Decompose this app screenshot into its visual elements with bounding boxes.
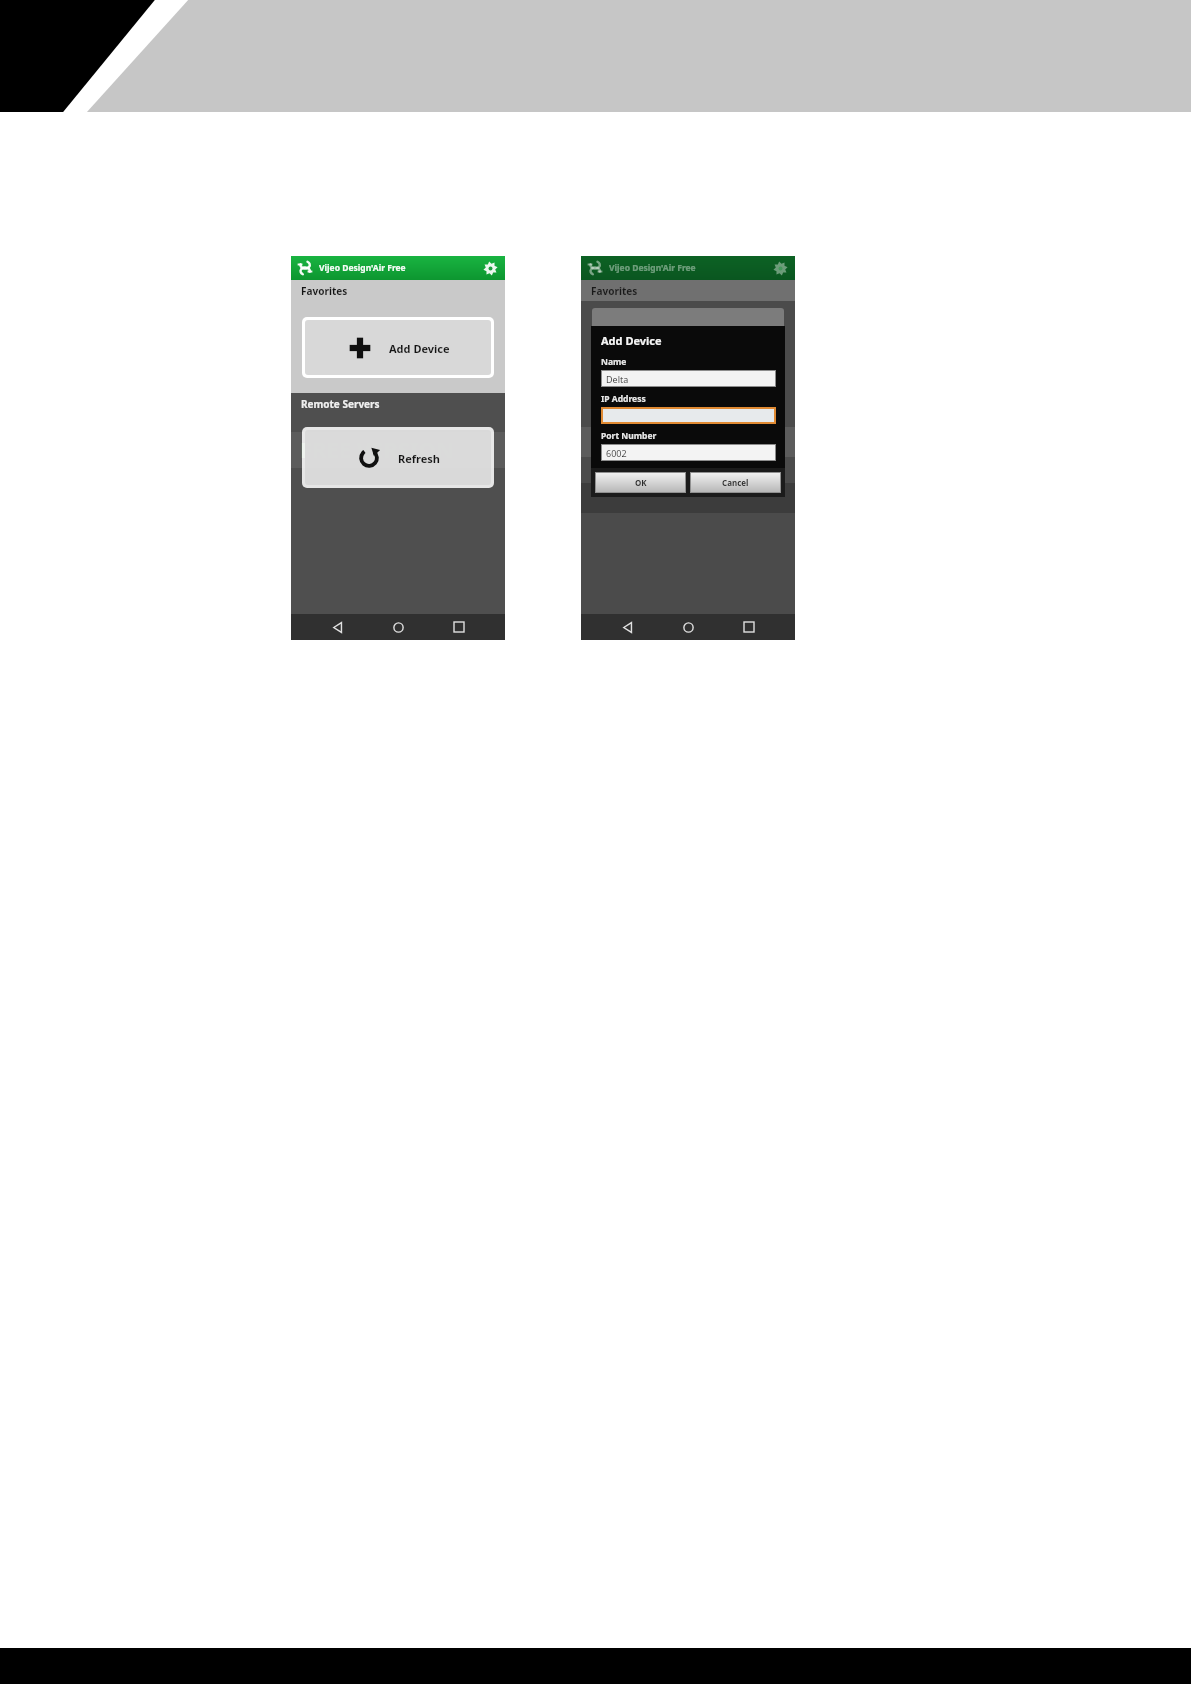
button[interactable]: Recent apps: [444, 614, 474, 640]
button[interactable]: Add Device: [305, 320, 491, 375]
staticText: FREE VERSION: [300, 434, 454, 464]
button[interactable]: Settings: [770, 258, 790, 278]
staticText: Add Device: [601, 333, 662, 348]
staticText: Favorites: [591, 284, 638, 298]
button[interactable]: Settings: [480, 258, 500, 278]
staticText: Refresh: [398, 451, 440, 466]
staticText: 6002: [606, 447, 627, 459]
button[interactable]: Cancel: [690, 472, 781, 493]
staticText: OK: [635, 477, 647, 488]
staticText: Name: [601, 356, 627, 368]
staticText: IP Address: [601, 393, 646, 405]
button[interactable]: Home: [383, 614, 413, 640]
button[interactable]: Delta: [601, 370, 776, 387]
staticText: Favorites: [301, 284, 348, 298]
button[interactable]: [601, 407, 776, 424]
staticText: Add Device: [389, 341, 450, 356]
staticText: Delta: [606, 373, 629, 385]
other: App logo: [586, 259, 604, 277]
other: App logo: [296, 259, 314, 277]
button[interactable]: Refresh: [305, 430, 491, 485]
button[interactable]: OK: [595, 472, 686, 493]
button[interactable]: Back: [322, 614, 352, 640]
staticText: Remote Servers: [301, 397, 380, 411]
staticText: Cancel: [722, 477, 749, 488]
button[interactable]: 6002: [601, 444, 776, 461]
staticText: Port Number: [601, 430, 657, 442]
button[interactable]: Home: [673, 614, 703, 640]
staticText: Vijeo Design'Air Free: [609, 262, 696, 274]
button[interactable]: Recent apps: [734, 614, 764, 640]
staticText: Vijeo Design'Air Free: [319, 262, 406, 274]
button[interactable]: Back: [612, 614, 642, 640]
